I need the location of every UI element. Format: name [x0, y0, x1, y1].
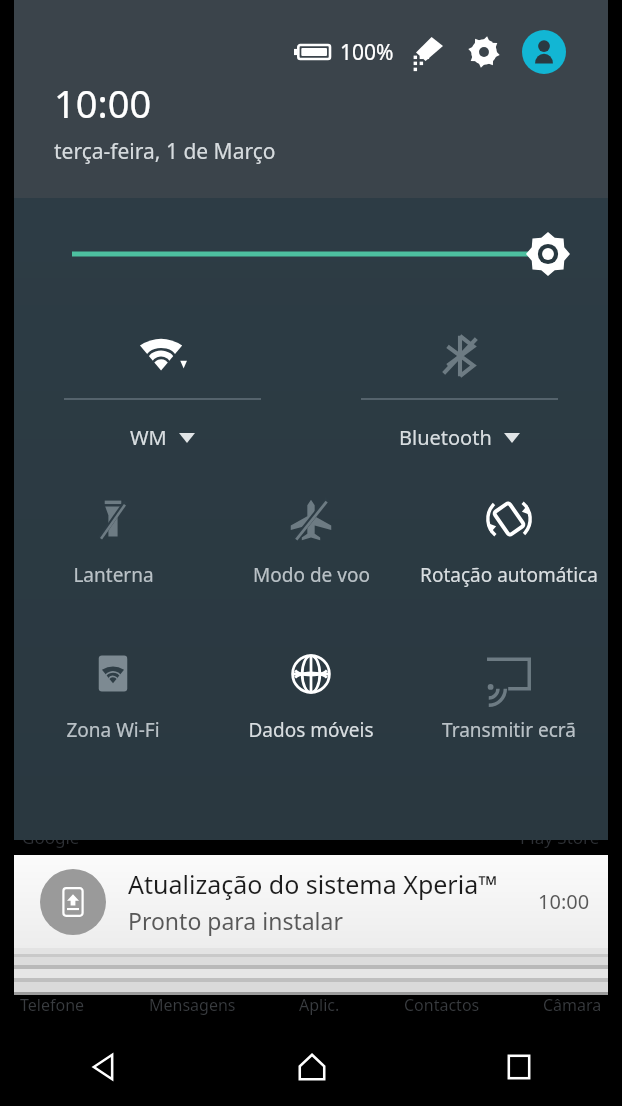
button[interactable]: Settings	[464, 32, 504, 72]
staticText: Atualização do sistema Xperia™	[128, 867, 498, 901]
button[interactable]: Rotação automática	[410, 470, 608, 625]
staticText: Aplic.	[299, 994, 340, 1016]
staticText: Google	[22, 826, 80, 849]
button[interactable]: Recents	[415, 1028, 622, 1106]
button[interactable]: Brightness	[14, 224, 608, 284]
staticText: Câmara	[543, 994, 602, 1016]
staticText: Transmitir ecrã	[442, 717, 576, 743]
staticText: Dados móveis	[248, 717, 374, 743]
staticText: Modo de voo	[253, 562, 370, 588]
staticText: Contactos	[404, 994, 480, 1016]
button[interactable]: Lanterna	[14, 470, 212, 625]
button[interactable]: Modo de voo	[212, 470, 410, 625]
staticText: Pronto para instalar	[128, 905, 343, 936]
staticText: 100%	[340, 38, 394, 67]
staticText: Rotação automática	[420, 562, 598, 588]
button[interactable]: Edit quick settings	[408, 32, 448, 72]
staticText: Mensagens	[149, 994, 236, 1016]
staticText: 10:00	[538, 888, 590, 915]
staticText: Telefone	[20, 994, 85, 1016]
staticText: Zona Wi-Fi	[66, 717, 160, 743]
button[interactable]: User profile	[522, 30, 566, 74]
staticText: terça-feira, 1 de Março	[54, 137, 276, 166]
staticText: 10:00	[54, 77, 152, 129]
button[interactable]: Back	[0, 1028, 208, 1106]
staticText: Lanterna	[73, 562, 154, 588]
button[interactable]: Dados móveis	[212, 625, 410, 780]
button[interactable]: Transmitir ecrã	[410, 625, 608, 780]
button[interactable]: Bluetooth	[311, 310, 608, 470]
button[interactable]: Atualização do sistema Xperia™	[14, 855, 608, 948]
staticText: Play Store	[520, 826, 600, 849]
staticText: WM	[130, 424, 167, 451]
button[interactable]: Home	[208, 1028, 415, 1106]
button[interactable]: Zona Wi-Fi	[14, 625, 212, 780]
staticText: Bluetooth	[399, 424, 492, 451]
button[interactable]: WM	[14, 310, 311, 470]
